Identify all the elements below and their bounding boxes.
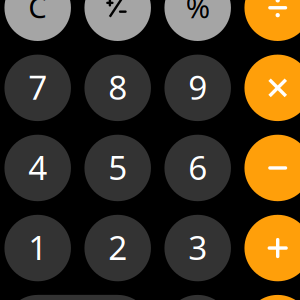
- button[interactable]: Zero: [4, 295, 151, 300]
- staticText: 8: [108, 65, 127, 109]
- button[interactable]: Seven: [4, 55, 71, 121]
- button[interactable]: Minus: [244, 135, 300, 201]
- staticText: 4: [28, 145, 47, 189]
- staticText: 7: [28, 65, 47, 109]
- staticText: 5: [108, 145, 127, 189]
- button[interactable]: Plus: [244, 215, 300, 281]
- staticText: 6: [188, 145, 207, 189]
- staticText: 9: [188, 65, 207, 109]
- button[interactable]: Two: [84, 215, 151, 281]
- button[interactable]: Divide: [244, 0, 300, 41]
- button[interactable]: Toggle sign: [84, 0, 151, 41]
- button[interactable]: Equals: [244, 295, 300, 300]
- staticText: C: [28, 0, 47, 26]
- staticText: 1: [28, 225, 47, 269]
- button[interactable]: Three: [164, 215, 231, 281]
- button[interactable]: Four: [4, 135, 71, 201]
- button[interactable]: Five: [84, 135, 151, 201]
- button[interactable]: Decimal point: [164, 295, 231, 300]
- staticText: %: [186, 0, 210, 26]
- button[interactable]: Eight: [84, 55, 151, 121]
- button[interactable]: Clear: [4, 0, 71, 41]
- button[interactable]: One: [4, 215, 71, 281]
- button[interactable]: Nine: [164, 55, 231, 121]
- button[interactable]: Multiply: [244, 55, 300, 121]
- staticText: 3: [188, 225, 207, 269]
- button[interactable]: Six: [164, 135, 231, 201]
- staticText: 2: [108, 225, 127, 269]
- button[interactable]: Percent: [164, 0, 231, 41]
